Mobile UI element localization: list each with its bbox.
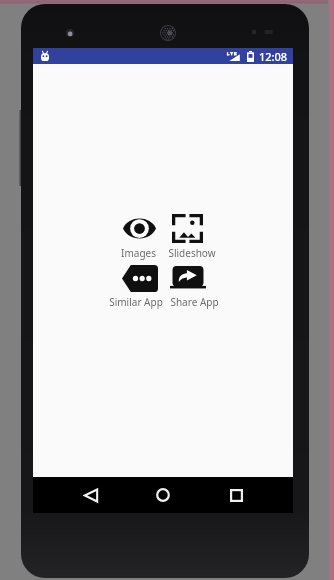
staticText: Similar App — [109, 295, 163, 309]
staticText: Slideshow — [168, 246, 216, 260]
staticText: Share App — [170, 295, 219, 309]
button[interactable]: Slideshow — [165, 214, 218, 260]
button[interactable]: Images — [112, 214, 165, 260]
button[interactable]: Share App — [165, 264, 224, 309]
staticText: Images — [121, 246, 156, 260]
button[interactable]: Recent apps — [219, 478, 253, 512]
button[interactable]: Back — [74, 478, 108, 512]
button[interactable]: Similar App — [106, 264, 165, 309]
staticText: 12:08 — [259, 49, 288, 64]
button[interactable]: Home — [146, 478, 180, 512]
